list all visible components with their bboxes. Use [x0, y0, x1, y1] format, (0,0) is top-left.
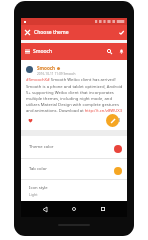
staticText: Icon style: [29, 185, 48, 191]
staticText: Choose theme: [34, 29, 69, 36]
button[interactable]: Search: [103, 43, 116, 60]
staticText: Theme color: [29, 144, 54, 150]
staticText: #SmoochX# Smooth Weibo client has arrive…: [26, 77, 123, 113]
button[interactable]: Like: [27, 117, 34, 124]
staticText: Smooch: [33, 48, 53, 55]
button[interactable]: Done: [116, 25, 127, 40]
button[interactable]: Back: [38, 202, 52, 216]
staticText: Smooch: [37, 65, 56, 71]
button[interactable]: Close: [21, 25, 34, 40]
button[interactable]: Icon style: [21, 180, 127, 201]
button[interactable]: Compose: [106, 114, 119, 127]
staticText: Light: [29, 192, 38, 197]
staticText: 2016-10-11 11:09 Smooch: [37, 72, 76, 76]
button[interactable]: Recents: [96, 202, 110, 216]
button[interactable]: Menu: [21, 43, 33, 60]
button[interactable]: Tab color: [21, 159, 127, 179]
button[interactable]: Theme color: [21, 136, 127, 158]
button[interactable]: Notifications: [116, 43, 127, 60]
staticText: Tab color: [29, 166, 47, 172]
button[interactable]: Home: [67, 202, 81, 216]
